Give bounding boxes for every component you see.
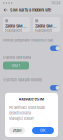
button[interactable]: SIM 1 — [3, 61, 29, 69]
button[interactable]: Žádná SIM karta — [3, 17, 30, 32]
button[interactable]: Zrušit — [9, 127, 25, 134]
staticText: 10:24 — [51, 1, 60, 5]
button[interactable]: Toggle — [50, 45, 60, 51]
button[interactable]: Toggle — [50, 85, 60, 91]
staticText: SIM 1 — [11, 63, 20, 68]
staticText: Zrušit — [12, 128, 21, 133]
staticText: Žádná SIM karta — [5, 24, 28, 28]
button[interactable]: Back — [3, 7, 8, 12]
staticText: SIM karty a mobilní sítě — [10, 8, 51, 12]
staticText: Povolit přepínání mobilních dat — [3, 38, 53, 42]
staticText: Datová SIM karta — [3, 55, 31, 59]
staticText: Žádná SIM karta — [35, 24, 58, 28]
staticText: deaktivována — [9, 111, 31, 115]
staticText: Aktivace eSIM — [18, 97, 44, 101]
staticText: Nastavení — [35, 28, 52, 33]
staticText: Nastavení — [5, 28, 22, 33]
staticText: OK — [40, 128, 46, 133]
staticText: Po aktivaci eSIM bude — [9, 105, 45, 110]
button[interactable]: Žádná SIM karta — [33, 17, 60, 32]
button[interactable]: OK — [32, 127, 54, 134]
staticText: Výchozí SIM pro hovory — [3, 77, 42, 82]
staticText: stávající eSIM? — [9, 116, 34, 121]
